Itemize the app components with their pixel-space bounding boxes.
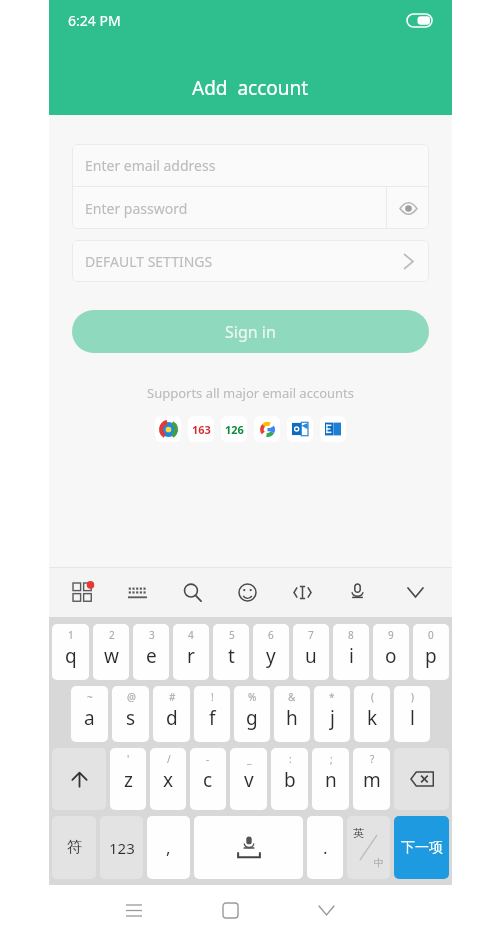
button[interactable]: backspace: [394, 748, 449, 810]
staticText: u: [305, 643, 317, 669]
staticText: r: [187, 643, 195, 669]
button[interactable]: Voice input: [342, 577, 372, 607]
staticText: g: [246, 705, 258, 731]
button[interactable]: #: [153, 686, 190, 742]
staticText: q: [65, 643, 77, 669]
button[interactable]: Recents: [114, 890, 154, 930]
button[interactable]: 6: [253, 624, 289, 680]
button[interactable]: space: [194, 816, 303, 879]
staticText: 126: [225, 422, 244, 437]
button[interactable]: Sign in: [72, 310, 429, 353]
staticText: #: [169, 690, 176, 704]
button[interactable]: ;: [312, 748, 349, 810]
button[interactable]: 5: [213, 624, 249, 680]
staticText: k: [367, 705, 378, 731]
button[interactable]: 163 Mail: [188, 416, 214, 442]
button[interactable]: lang: [347, 816, 390, 879]
button[interactable]: -: [190, 748, 226, 810]
staticText: -: [206, 752, 210, 766]
button[interactable]: shift: [52, 748, 106, 810]
button[interactable]: :: [271, 748, 308, 810]
staticText: /: [167, 752, 171, 766]
staticText: 1: [68, 628, 74, 642]
button[interactable]: !: [194, 686, 230, 742]
button[interactable]: ): [394, 686, 430, 742]
button[interactable]: 4: [173, 624, 209, 680]
staticText: i: [349, 643, 354, 669]
button[interactable]: Apps: [67, 577, 97, 607]
staticText: 6: [268, 628, 274, 642]
staticText: l: [410, 705, 415, 731]
button[interactable]: Gmail: [254, 416, 280, 442]
button[interactable]: 123: [100, 816, 143, 879]
button[interactable]: .: [307, 816, 343, 879]
button[interactable]: Enter email address: [72, 144, 429, 186]
staticText: d: [166, 705, 178, 731]
button[interactable]: _: [230, 748, 267, 810]
staticText: a: [84, 705, 95, 731]
staticText: Add account: [192, 75, 309, 101]
button[interactable]: qq: [155, 416, 181, 442]
button[interactable]: 8: [333, 624, 369, 680]
staticText: 123: [109, 838, 135, 858]
staticText: 2: [109, 628, 115, 642]
button[interactable]: (: [354, 686, 390, 742]
staticText: o: [385, 643, 397, 669]
button[interactable]: 下一项: [394, 816, 449, 879]
button[interactable]: Search: [177, 577, 207, 607]
staticText: 符: [67, 838, 82, 857]
button[interactable]: Text cursor: [287, 577, 317, 607]
button[interactable]: 9: [373, 624, 409, 680]
staticText: 下一项: [401, 839, 443, 857]
button[interactable]: ?: [353, 748, 390, 810]
button[interactable]: Home: [210, 890, 250, 930]
staticText: p: [425, 643, 437, 669]
button[interactable]: DEFAULT SETTINGS: [72, 240, 429, 282]
button[interactable]: Keyboard layout: [122, 577, 152, 607]
button[interactable]: 1: [52, 624, 89, 680]
button[interactable]: 符: [52, 816, 96, 879]
button[interactable]: Emoji: [232, 577, 262, 607]
staticText: j: [330, 705, 335, 731]
staticText: f: [209, 705, 216, 731]
button[interactable]: /: [150, 748, 186, 810]
staticText: w: [104, 643, 119, 669]
button[interactable]: &: [274, 686, 310, 742]
staticText: c: [203, 767, 213, 793]
staticText: *: [329, 690, 335, 704]
button[interactable]: 0: [413, 624, 449, 680]
button[interactable]: 3: [133, 624, 169, 680]
staticText: 英: [353, 826, 364, 840]
button[interactable]: ,: [147, 816, 190, 879]
staticText: ': [127, 752, 130, 766]
staticText: 4: [188, 628, 194, 642]
staticText: v: [244, 767, 254, 793]
button[interactable]: Exchange: [320, 416, 346, 442]
staticText: 8: [348, 628, 354, 642]
button[interactable]: *: [314, 686, 350, 742]
staticText: ): [411, 690, 414, 704]
staticText: Enter email address: [85, 156, 216, 175]
staticText: h: [286, 705, 298, 731]
button[interactable]: Hide keyboard: [400, 577, 430, 607]
button[interactable]: 7: [293, 624, 329, 680]
staticText: 中: [374, 856, 384, 869]
button[interactable]: 126 Mail: [221, 416, 247, 442]
button[interactable]: Outlook: [287, 416, 313, 442]
button[interactable]: ': [110, 748, 146, 810]
staticText: n: [325, 767, 337, 793]
staticText: DEFAULT SETTINGS: [85, 252, 404, 271]
staticText: %: [248, 690, 257, 704]
staticText: ;: [330, 752, 333, 766]
staticText: 5: [229, 628, 235, 642]
button[interactable]: %: [234, 686, 270, 742]
button[interactable]: ~: [71, 686, 108, 742]
button[interactable]: Enter password: [72, 187, 386, 229]
staticText: ?: [370, 752, 375, 766]
staticText: .: [323, 836, 328, 859]
button[interactable]: 2: [93, 624, 129, 680]
button[interactable]: Show password: [387, 187, 429, 229]
button[interactable]: @: [112, 686, 149, 742]
button[interactable]: Back: [306, 890, 346, 930]
staticText: b: [284, 767, 296, 793]
